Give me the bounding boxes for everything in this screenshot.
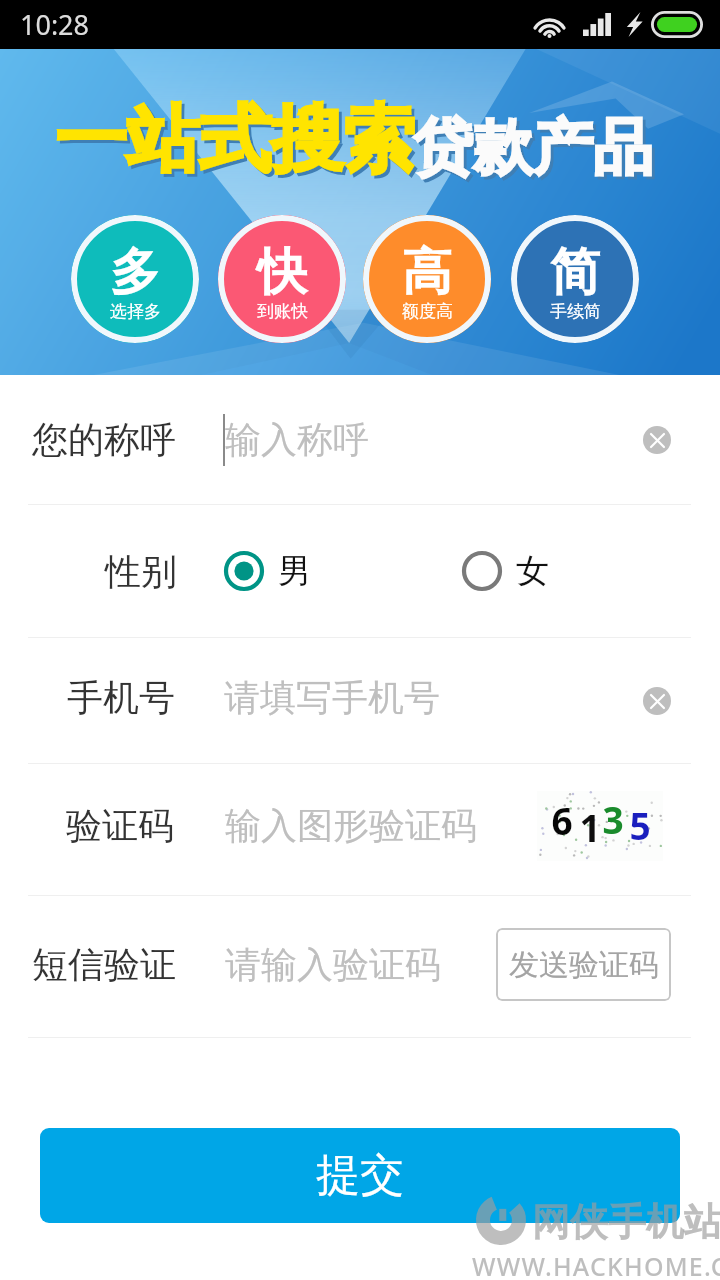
staticText: 贷款产品	[416, 113, 656, 189]
staticText: 性别	[105, 549, 177, 594]
button[interactable]: 验证码	[0, 764, 720, 895]
staticText: 到账快	[257, 301, 308, 322]
button[interactable]: 您的称呼	[0, 375, 720, 504]
button[interactable]: 快	[218, 215, 346, 343]
staticText: 女	[516, 550, 549, 592]
button[interactable]: Clear text	[643, 687, 671, 715]
staticText: 您的称呼	[32, 417, 176, 462]
staticText: 6	[551, 795, 573, 845]
button[interactable]: 手机号	[0, 638, 720, 763]
staticText: 10:28	[20, 6, 90, 43]
staticText: 手机号	[67, 675, 175, 720]
staticText: 请输入验证码	[225, 942, 441, 987]
button[interactable]: Refresh captcha image	[537, 791, 663, 861]
button[interactable]: 提交	[40, 1128, 680, 1223]
staticText: 网侠手机站	[532, 1198, 720, 1246]
staticText: 简	[550, 241, 600, 304]
staticText: 验证码	[66, 803, 174, 848]
staticText: 1	[579, 802, 601, 852]
button[interactable]: Clear text	[643, 426, 671, 454]
button[interactable]: 发送验证码	[496, 928, 671, 1001]
staticText: 额度高	[402, 301, 453, 322]
staticText: 手续简	[550, 301, 601, 322]
staticText: 高	[402, 241, 452, 304]
staticText: 一站式搜索	[55, 95, 415, 186]
staticText: 贷款产品	[413, 110, 653, 186]
button[interactable]: 男	[222, 549, 311, 593]
staticText: 快	[257, 241, 307, 304]
button[interactable]: 高	[363, 215, 491, 343]
staticText: 输入图形验证码	[225, 803, 477, 848]
staticText: 5	[629, 800, 651, 850]
staticText: 请填写手机号	[224, 675, 440, 720]
staticText: 提交	[316, 1148, 404, 1203]
staticText: 短信验证	[32, 942, 176, 987]
staticText: 男	[278, 550, 311, 592]
staticText: WWW.HACKHOME.COM	[472, 1249, 720, 1280]
button[interactable]: 女	[460, 549, 549, 593]
staticText: 发送验证码	[509, 946, 659, 984]
staticText: 3	[602, 794, 624, 844]
button[interactable]: 简	[511, 215, 639, 343]
staticText: 选择多	[110, 301, 161, 322]
staticText: 一站式搜索	[58, 98, 418, 189]
staticText: 输入称呼	[225, 417, 369, 462]
button[interactable]: 多	[71, 215, 199, 343]
staticText: 多	[110, 241, 160, 304]
